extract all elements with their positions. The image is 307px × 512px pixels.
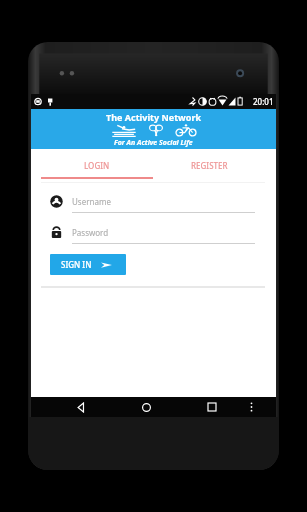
button[interactable]: More options <box>244 397 258 417</box>
staticText: The Activity Network <box>106 111 201 123</box>
staticText: REGISTER <box>191 160 228 171</box>
button[interactable]: Home <box>114 397 179 417</box>
button[interactable]: Password <box>50 226 255 244</box>
staticText: 20:01 <box>253 96 274 107</box>
button[interactable]: Recent apps <box>179 397 244 417</box>
button[interactable]: REGISTER <box>153 154 265 177</box>
button[interactable]: SIGN IN <box>50 254 126 275</box>
staticText: For An Active Social Life <box>114 138 193 148</box>
button[interactable]: LOGIN <box>41 154 153 177</box>
button[interactable]: Username <box>50 195 255 213</box>
staticText: SIGN IN <box>61 259 92 270</box>
staticText: Username <box>72 196 111 207</box>
button[interactable]: Back <box>49 397 114 417</box>
staticText: LOGIN <box>84 160 110 171</box>
staticText: Password <box>72 227 109 238</box>
